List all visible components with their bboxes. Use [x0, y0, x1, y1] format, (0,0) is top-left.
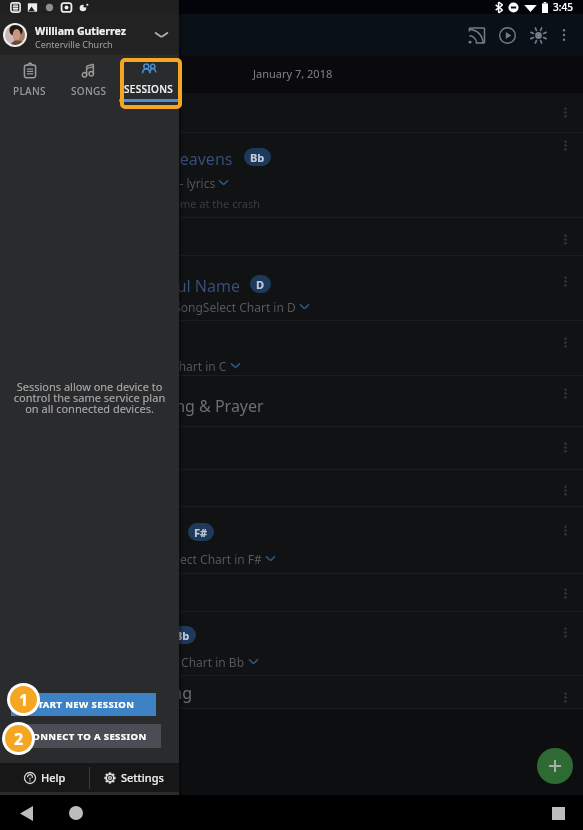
- button[interactable]: Cast: [461, 14, 492, 56]
- button[interactable]: [0, 612, 583, 676]
- button[interactable]: Play: [492, 14, 523, 56]
- staticText: William Gutierrez: [35, 24, 126, 38]
- button[interactable]: Item options: [555, 229, 575, 249]
- staticText: D: [256, 277, 265, 292]
- staticText: 1: [19, 689, 29, 711]
- button[interactable]: Item options: [555, 480, 575, 500]
- button[interactable]: [0, 574, 583, 612]
- button[interactable]: [0, 256, 583, 321]
- button[interactable]: Item options: [555, 520, 575, 540]
- staticText: SongSelect Chart in F#: [135, 551, 262, 567]
- button[interactable]: More options: [544, 14, 583, 56]
- staticText: SONGS: [71, 84, 107, 98]
- staticText: 2: [14, 728, 24, 750]
- button[interactable]: [0, 133, 583, 218]
- button[interactable]: SESSIONS: [119, 55, 179, 102]
- staticText: PLANS: [13, 84, 46, 98]
- staticText: Your Wonderful Name: [73, 275, 240, 297]
- staticText: SongSelect Chart in Bb: [116, 654, 245, 670]
- button[interactable]: Recents: [545, 800, 571, 826]
- button[interactable]: Item options: [555, 622, 575, 642]
- staticText: Bb: [250, 150, 265, 165]
- button[interactable]: Home: [63, 800, 89, 826]
- staticText: Praise - lyrics: [142, 175, 216, 191]
- button[interactable]: [0, 676, 583, 709]
- staticText: SongSelect Chart in C: [106, 358, 227, 374]
- button[interactable]: William Gutierrez: [0, 14, 179, 55]
- staticText: Help: [41, 770, 66, 785]
- staticText: Praise The Heavens: [86, 148, 233, 170]
- staticText: Sessions allow one device to control the…: [8, 379, 171, 416]
- button[interactable]: PLANS: [0, 55, 59, 102]
- staticText: January 7, 2018: [253, 66, 333, 81]
- button[interactable]: [0, 321, 583, 376]
- button[interactable]: Item options: [555, 102, 575, 122]
- button[interactable]: Help: [0, 763, 89, 792]
- button[interactable]: [0, 93, 583, 133]
- button[interactable]: Item options: [555, 271, 575, 291]
- staticText: Bb: [175, 628, 190, 643]
- button[interactable]: Item options: [555, 383, 575, 403]
- button[interactable]: [0, 427, 583, 470]
- button[interactable]: CONNECT TO A SESSION: [11, 724, 161, 748]
- button[interactable]: Add: [537, 748, 573, 784]
- button[interactable]: [0, 470, 583, 507]
- button[interactable]: Item options: [555, 135, 575, 155]
- button[interactable]: Item options: [555, 437, 575, 457]
- button[interactable]: [0, 218, 583, 256]
- button[interactable]: [0, 376, 583, 427]
- button[interactable]: [0, 507, 583, 574]
- staticText: 3:45: [553, 0, 573, 14]
- staticText: START NEW SESSION: [32, 698, 135, 711]
- staticText: CONNECT TO A SESSION: [26, 730, 147, 743]
- staticText: F#: [194, 525, 208, 540]
- button[interactable]: Settings: [89, 763, 179, 792]
- staticText: Acoustic - SongSelect Chart in D: [117, 299, 296, 315]
- staticText: Offering: [129, 682, 192, 704]
- button[interactable]: Item options: [555, 687, 575, 707]
- button[interactable]: Item options: [555, 332, 575, 352]
- staticText: Welcome at the crash: [149, 196, 261, 211]
- button[interactable]: START NEW SESSION: [11, 693, 156, 716]
- button[interactable]: Brightness: [523, 14, 554, 56]
- staticText: Settings: [121, 770, 164, 785]
- button[interactable]: Item options: [555, 583, 575, 603]
- button[interactable]: SONGS: [59, 55, 119, 102]
- staticText: Welcoming & Prayer: [111, 395, 264, 417]
- staticText: Centerville Church: [35, 38, 113, 50]
- staticText: SESSIONS: [124, 82, 174, 96]
- button[interactable]: Back: [13, 800, 39, 826]
